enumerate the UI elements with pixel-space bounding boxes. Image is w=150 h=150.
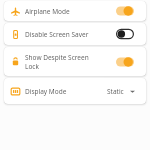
button[interactable]: Static bbox=[107, 87, 135, 96]
button[interactable]: Toggle on bbox=[116, 5, 138, 17]
staticText: Disable Screen Saver bbox=[25, 30, 116, 39]
staticText: Show Despite Screen Lock bbox=[25, 53, 91, 71]
staticText: Display Mode bbox=[25, 87, 107, 96]
button[interactable]: Display Mode bbox=[4, 78, 146, 104]
button[interactable]: Show Despite Screen Lock bbox=[4, 47, 146, 76]
button[interactable]: Toggle off bbox=[116, 28, 138, 40]
button[interactable]: Toggle on bbox=[116, 56, 138, 68]
button[interactable]: Airplane Mode bbox=[4, 1, 146, 21]
button[interactable]: Disable Screen Saver bbox=[4, 23, 146, 45]
staticText: Static bbox=[107, 87, 124, 96]
staticText: Airplane Mode bbox=[25, 7, 116, 16]
